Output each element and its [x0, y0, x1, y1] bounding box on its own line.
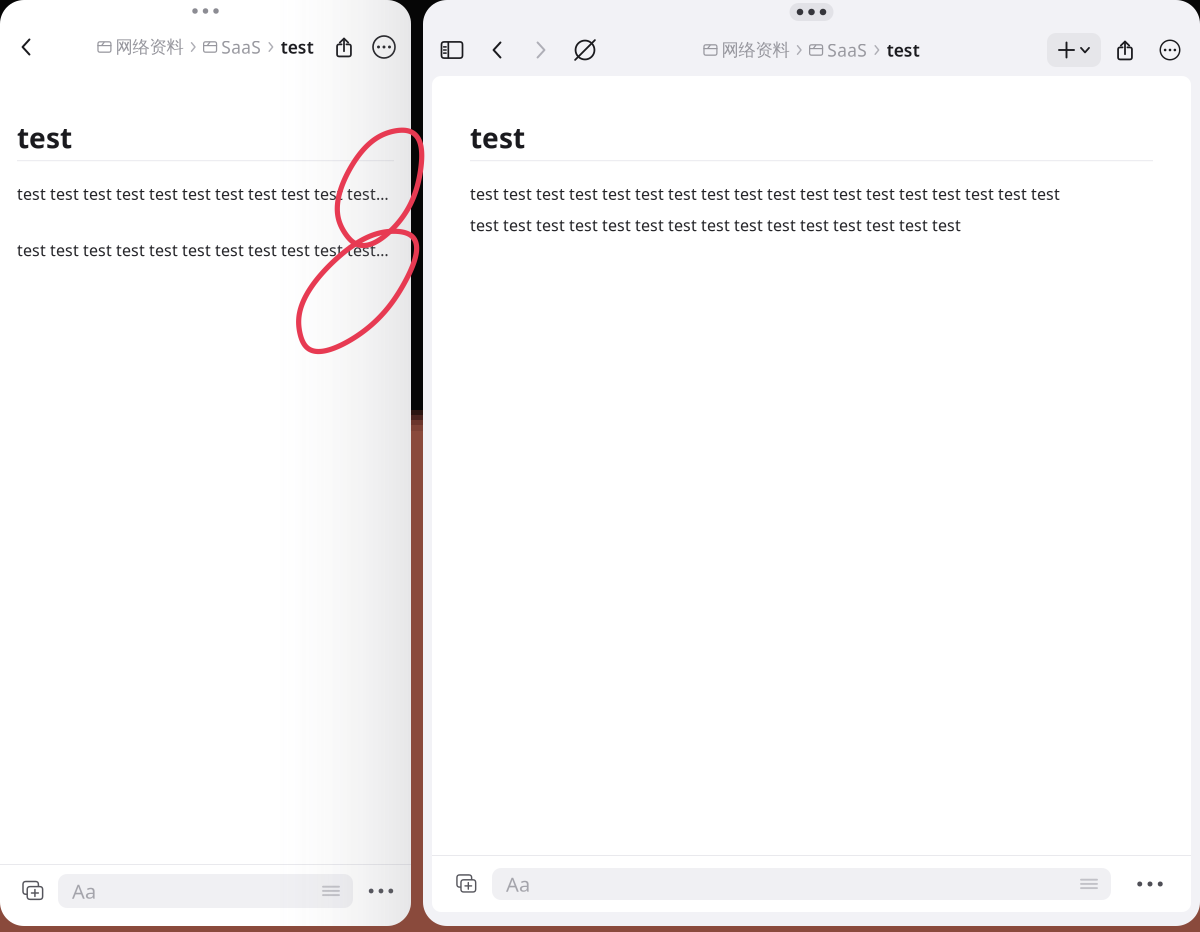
staticText: SaaS: [221, 35, 261, 58]
staticText: test: [887, 38, 920, 61]
button[interactable]: Aa: [492, 868, 1111, 900]
staticText: Aa: [72, 878, 96, 904]
staticText: test: [17, 119, 72, 156]
button[interactable]: More: [363, 22, 405, 72]
button[interactable]: Share: [325, 22, 363, 72]
button[interactable]: Aa: [58, 874, 353, 908]
staticText: 网络资料: [721, 39, 789, 61]
button[interactable]: Reader: [563, 24, 607, 76]
staticText: test test test test test test test test …: [17, 239, 389, 261]
button[interactable]: Back: [4, 22, 48, 72]
button[interactable]: Share: [1101, 24, 1149, 76]
button[interactable]: More options: [353, 865, 409, 917]
button[interactable]: 网络资料: [97, 36, 183, 58]
staticText: test: [470, 119, 525, 156]
staticText: test test test test test test test test …: [17, 183, 389, 204]
staticText: 网络资料: [115, 36, 183, 58]
button[interactable]: New: [1047, 33, 1101, 67]
button[interactable]: SaaS: [203, 35, 261, 58]
staticText: SaaS: [827, 38, 867, 61]
staticText: test: [281, 35, 314, 58]
button[interactable]: More options: [1111, 857, 1189, 911]
staticText: test test test test test test test test …: [470, 183, 1060, 204]
button[interactable]: Toggle sidebar: [429, 24, 475, 76]
button[interactable]: 网络资料: [703, 39, 789, 61]
button[interactable]: Back: [475, 24, 519, 76]
staticText: Aa: [506, 871, 530, 897]
staticText: test test test test test test test test …: [470, 214, 961, 236]
button[interactable]: test: [281, 35, 314, 58]
button[interactable]: test: [887, 38, 920, 61]
button[interactable]: Forward: [519, 24, 563, 76]
button[interactable]: New page: [440, 857, 492, 911]
button[interactable]: New page: [7, 865, 58, 917]
button[interactable]: More: [1149, 24, 1191, 76]
button[interactable]: SaaS: [809, 38, 867, 61]
